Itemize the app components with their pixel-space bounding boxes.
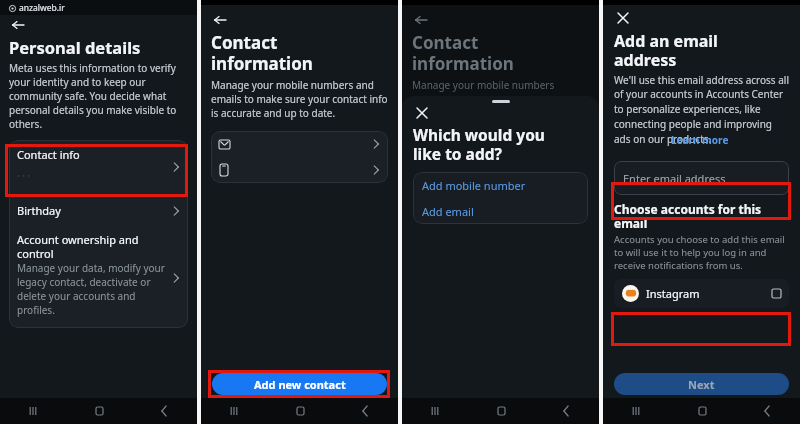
staticText: Manage your mobile numbers and emails to… bbox=[211, 78, 388, 120]
button[interactable]: Recent apps bbox=[627, 402, 645, 420]
staticText: Add email bbox=[422, 204, 474, 219]
staticText: Meta uses this information to verify you… bbox=[9, 61, 188, 131]
button[interactable]: Back bbox=[356, 402, 374, 420]
button[interactable]: Back bbox=[211, 11, 229, 29]
staticText: Add an email address bbox=[614, 30, 718, 71]
button[interactable]: Home bbox=[291, 402, 309, 420]
button[interactable]: Contact info bbox=[9, 140, 188, 193]
button[interactable]: Back bbox=[557, 402, 575, 420]
button[interactable]: Recent apps bbox=[24, 402, 42, 420]
staticText: Birthday bbox=[17, 203, 61, 218]
button[interactable]: Instagram bbox=[614, 279, 789, 308]
staticText: • • • bbox=[17, 170, 31, 181]
button[interactable]: Add email bbox=[413, 198, 588, 224]
button[interactable]: Mobile number bbox=[211, 157, 388, 183]
staticText: Manage your mobile numbers bbox=[412, 78, 555, 92]
button[interactable]: Back bbox=[9, 16, 27, 34]
staticText: Contact info bbox=[17, 147, 80, 162]
button[interactable]: Home bbox=[492, 402, 510, 420]
staticText: Instagram bbox=[646, 286, 700, 301]
button[interactable]: Enter email address bbox=[614, 161, 789, 195]
staticText: Enter email address bbox=[623, 171, 726, 186]
button[interactable]: Add mobile number bbox=[413, 172, 588, 198]
button[interactable]: Recent apps bbox=[225, 402, 243, 420]
staticText: We'll use this email address across all … bbox=[614, 73, 789, 146]
button[interactable]: Home bbox=[693, 402, 711, 420]
staticText: anzalweb.ir bbox=[19, 2, 65, 14]
button[interactable]: Close bbox=[614, 9, 632, 27]
staticText: Contact information bbox=[412, 31, 514, 75]
staticText: Personal details bbox=[9, 36, 141, 58]
staticText: Which would you like to add? bbox=[413, 124, 545, 164]
button[interactable]: Back bbox=[155, 402, 173, 420]
button[interactable]: Email bbox=[211, 131, 388, 157]
staticText: Account ownership and control bbox=[17, 232, 166, 261]
button[interactable]: Learn more bbox=[671, 133, 729, 147]
staticText: Next bbox=[688, 377, 715, 392]
button[interactable]: Home bbox=[90, 402, 108, 420]
staticText: Manage your data, modify your legacy con… bbox=[17, 261, 166, 317]
button[interactable]: Back bbox=[758, 402, 776, 420]
button[interactable]: Birthday bbox=[9, 193, 188, 228]
button[interactable]: Add new contact bbox=[212, 373, 387, 395]
staticText: Add new contact bbox=[254, 377, 346, 392]
staticText: Add mobile number bbox=[422, 178, 526, 193]
button[interactable]: Next bbox=[614, 373, 789, 395]
staticText: Contact information bbox=[211, 31, 313, 75]
button[interactable]: Recent apps bbox=[426, 402, 444, 420]
staticText: Accounts you choose to add this email to… bbox=[614, 233, 789, 272]
button[interactable]: Close bbox=[413, 104, 431, 122]
button[interactable]: Account ownership and control bbox=[9, 228, 188, 328]
button[interactable]: Back bbox=[412, 11, 430, 29]
staticText: Choose accounts for this email bbox=[614, 201, 789, 232]
